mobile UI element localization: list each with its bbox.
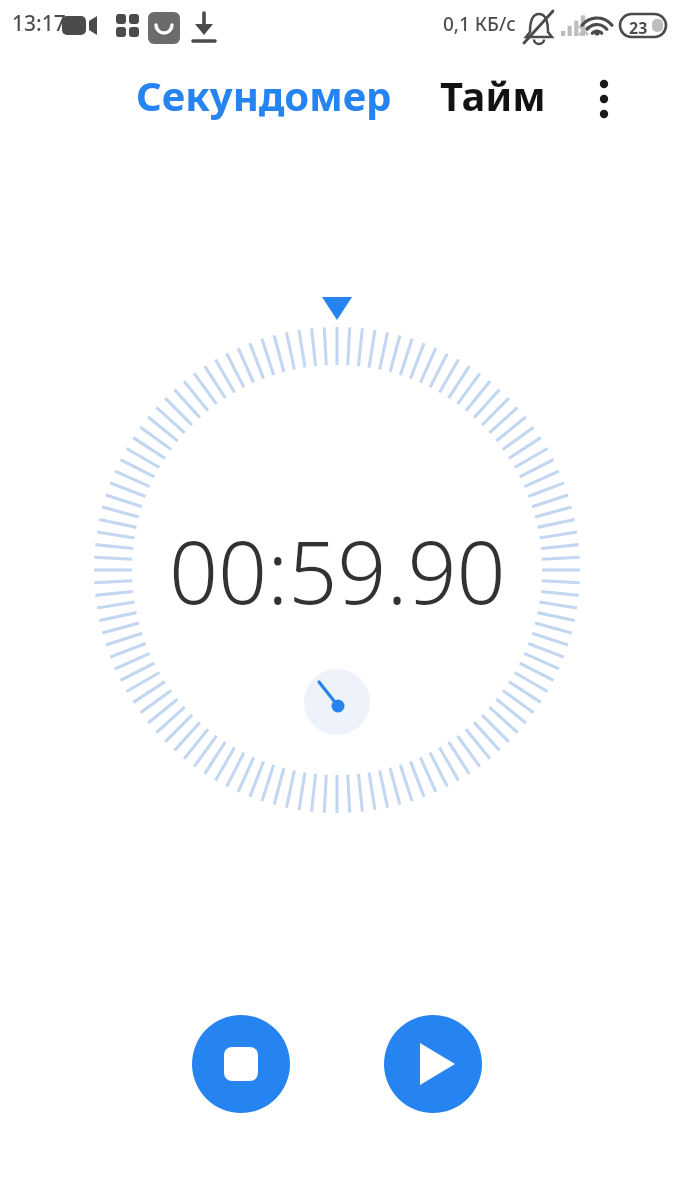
staticText: Секундомер — [136, 68, 392, 122]
button[interactable]: More options — [580, 70, 628, 126]
staticText: 13:17 — [12, 9, 66, 38]
staticText: Тайм — [440, 68, 546, 122]
staticText: 0,1 КБ/с — [443, 11, 516, 37]
staticText: 23 — [629, 17, 648, 39]
button[interactable]: Тайм — [440, 64, 570, 126]
staticText: 00:59.90 — [169, 512, 506, 629]
button[interactable]: Stop — [192, 1015, 290, 1113]
button[interactable]: Секундомер — [118, 64, 410, 126]
button[interactable]: Start — [384, 1015, 482, 1113]
